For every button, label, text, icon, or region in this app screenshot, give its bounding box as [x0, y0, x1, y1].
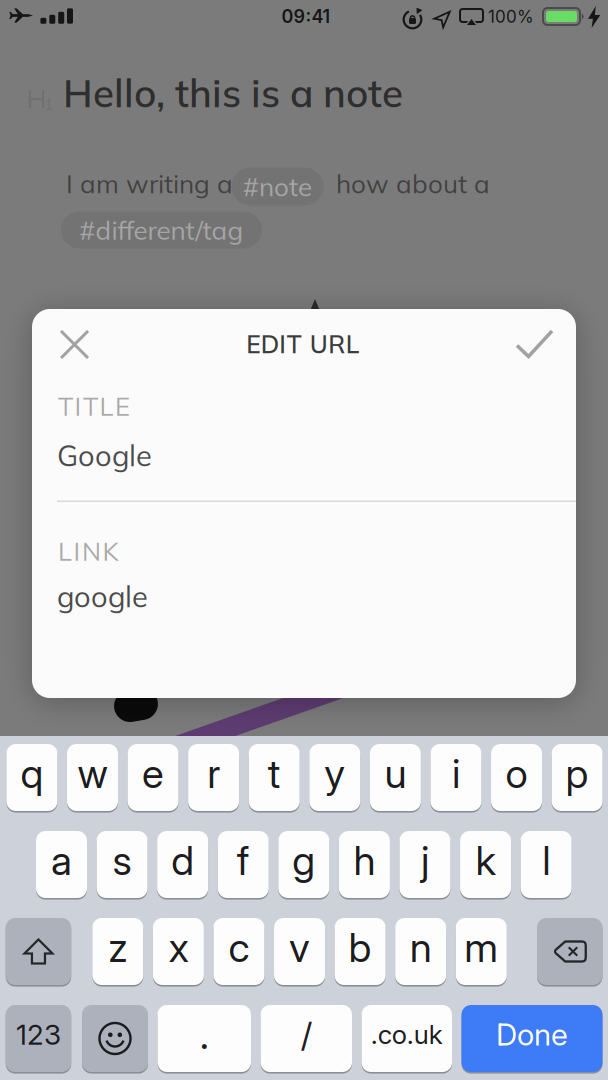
- button[interactable]: Title, Google: [33, 382, 577, 500]
- staticText: m: [464, 923, 498, 972]
- staticText: n: [410, 923, 432, 972]
- button[interactable]: /: [260, 1005, 352, 1072]
- button[interactable]: Shift: [6, 918, 71, 985]
- staticText: .co.uk: [371, 1019, 443, 1050]
- button[interactable]: .co.uk: [361, 1005, 452, 1072]
- staticText: c: [228, 923, 249, 972]
- staticText: p: [566, 749, 589, 798]
- staticText: 100%: [488, 6, 534, 27]
- staticText: q: [20, 749, 43, 798]
- staticText: 1: [44, 94, 54, 114]
- button[interactable]: c: [213, 918, 264, 985]
- button[interactable]: u: [370, 744, 421, 811]
- staticText: 123: [16, 1018, 61, 1051]
- staticText: s: [113, 836, 132, 885]
- button[interactable]: Link, google: [33, 528, 577, 678]
- staticText: Google: [57, 437, 152, 473]
- staticText: Hello, this is a note: [63, 68, 403, 117]
- button[interactable]: o: [491, 744, 542, 811]
- staticText: LINK: [58, 535, 118, 567]
- staticText: o: [505, 749, 527, 798]
- button[interactable]: e: [128, 744, 179, 811]
- staticText: 09:41: [281, 6, 330, 27]
- staticText: EDIT URL: [246, 329, 360, 359]
- staticText: Done: [496, 1016, 568, 1053]
- staticText: e: [142, 749, 164, 798]
- button[interactable]: Delete: [537, 918, 602, 985]
- staticText: r: [207, 749, 220, 798]
- button[interactable]: y: [309, 744, 360, 811]
- button[interactable]: p: [552, 744, 603, 811]
- staticText: z: [108, 923, 127, 972]
- staticText: j: [421, 836, 429, 885]
- button[interactable]: x: [153, 918, 204, 985]
- staticText: google: [57, 578, 148, 614]
- staticText: y: [324, 749, 345, 798]
- button[interactable]: q: [6, 744, 57, 811]
- staticText: .: [200, 1010, 209, 1059]
- button[interactable]: l: [521, 831, 572, 898]
- staticText: how about a: [336, 167, 490, 200]
- staticText: k: [476, 836, 496, 885]
- staticText: h: [353, 836, 375, 885]
- staticText: u: [384, 749, 406, 798]
- button[interactable]: t: [249, 744, 300, 811]
- staticText: f: [237, 836, 250, 885]
- button[interactable]: j: [399, 831, 450, 898]
- button[interactable]: g: [278, 831, 329, 898]
- button[interactable]: m: [456, 918, 507, 985]
- staticText: t: [268, 749, 281, 798]
- button[interactable]: Close: [54, 324, 95, 365]
- staticText: w: [77, 749, 107, 798]
- button[interactable]: s: [97, 831, 148, 898]
- staticText: v: [289, 923, 310, 972]
- button[interactable]: r: [188, 744, 239, 811]
- staticText: #different/tag: [79, 214, 243, 246]
- button[interactable]: h: [339, 831, 390, 898]
- staticText: i: [452, 749, 460, 798]
- staticText: a: [51, 836, 72, 885]
- button[interactable]: 123: [6, 1005, 71, 1072]
- staticText: b: [349, 923, 372, 972]
- button[interactable]: d: [157, 831, 208, 898]
- staticText: /: [301, 1014, 312, 1055]
- button[interactable]: Done: [461, 1005, 602, 1072]
- button[interactable]: n: [395, 918, 446, 985]
- staticText: g: [292, 836, 315, 885]
- button[interactable]: .: [157, 1005, 251, 1072]
- button[interactable]: f: [218, 831, 269, 898]
- staticText: #note: [243, 170, 312, 203]
- staticText: TITLE: [58, 390, 130, 422]
- button[interactable]: i: [430, 744, 481, 811]
- button[interactable]: v: [274, 918, 325, 985]
- staticText: l: [542, 836, 550, 885]
- button[interactable]: b: [335, 918, 386, 985]
- button[interactable]: w: [67, 744, 118, 811]
- staticText: d: [171, 836, 194, 885]
- button[interactable]: k: [460, 831, 511, 898]
- staticText: x: [168, 923, 188, 972]
- button[interactable]: Emoji: [82, 1005, 148, 1072]
- staticText: I am writing a: [66, 167, 233, 200]
- button[interactable]: z: [92, 918, 143, 985]
- button[interactable]: a: [36, 831, 87, 898]
- button[interactable]: Save: [514, 328, 555, 360]
- staticText: H: [26, 82, 46, 115]
